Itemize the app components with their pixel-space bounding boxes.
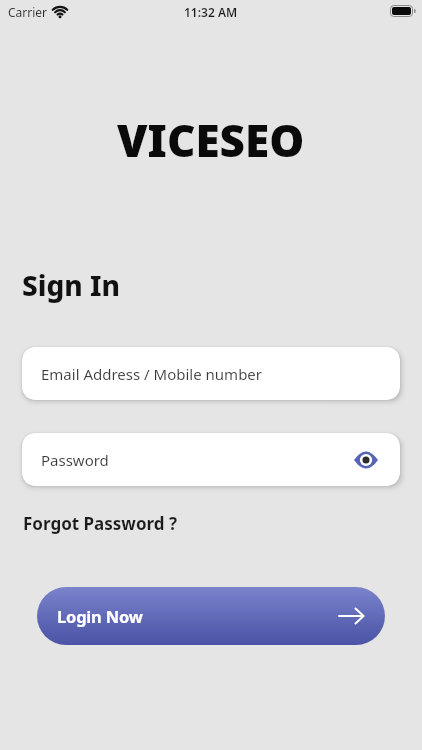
button[interactable]: Email Address / Mobile number	[22, 347, 400, 400]
staticText: Sign In	[22, 266, 121, 304]
staticText: Login Now	[57, 605, 143, 627]
button[interactable]: Password	[22, 433, 400, 486]
staticText: Email Address / Mobile number	[41, 364, 263, 384]
button[interactable]: Forgot Password ?	[23, 512, 178, 535]
staticText: 11:32 AM	[184, 4, 238, 20]
button[interactable]: Login Now	[37, 587, 385, 645]
button[interactable]	[354, 451, 378, 469]
staticText: Password	[41, 450, 109, 470]
staticText: Carrier	[8, 4, 48, 20]
staticText: VICESEO	[117, 110, 305, 170]
